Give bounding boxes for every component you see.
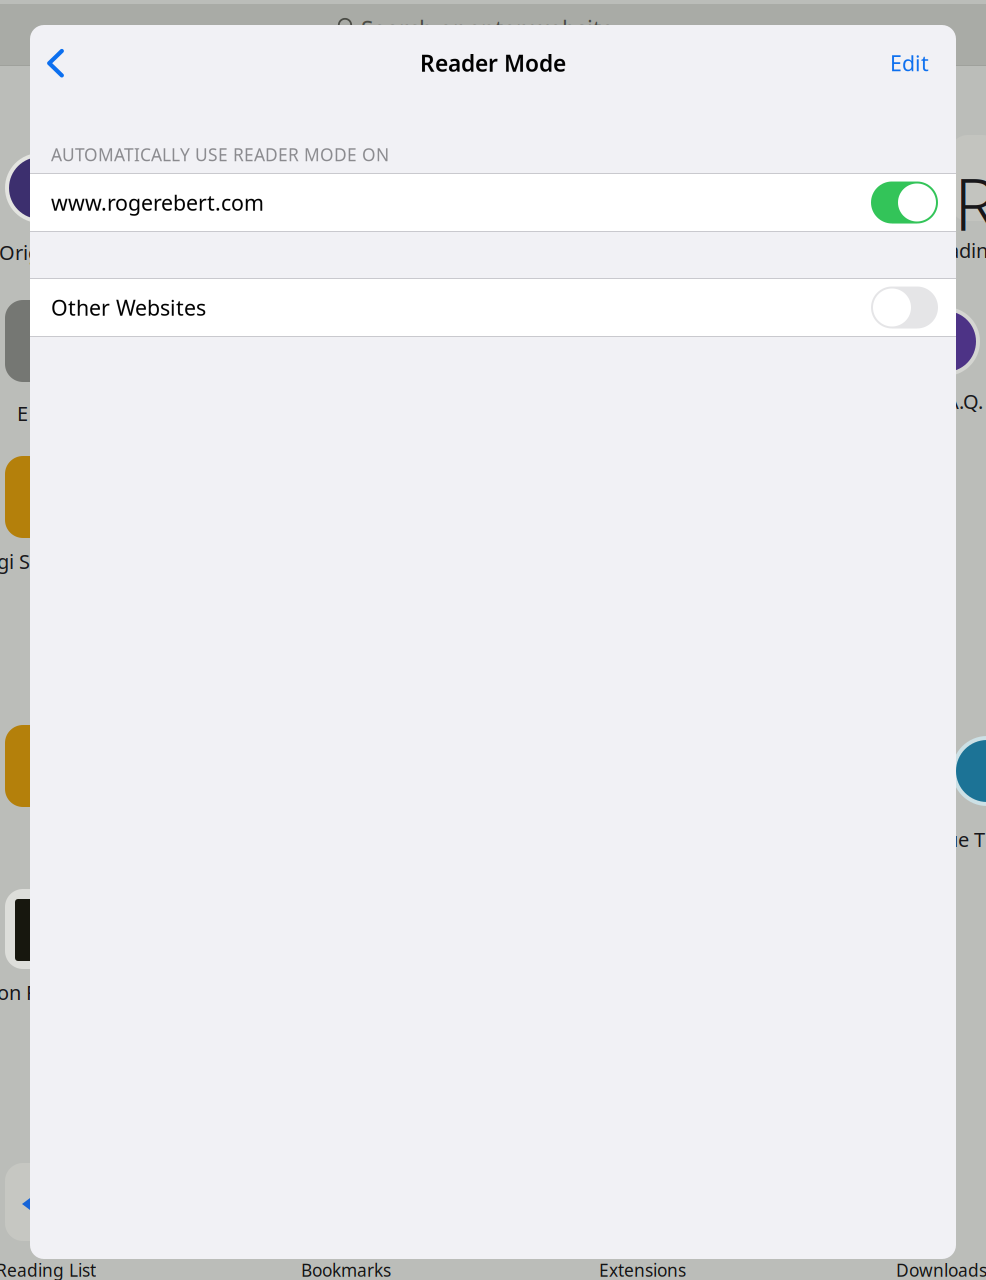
staticText: Reader Mode bbox=[420, 48, 566, 78]
button[interactable]: Bookmarks bbox=[301, 1259, 501, 1280]
staticText: A.Q. bbox=[946, 388, 983, 415]
staticText: on F bbox=[0, 979, 36, 1006]
button[interactable]: Reading List bbox=[0, 1259, 96, 1280]
button[interactable]: Other Websites bbox=[30, 279, 956, 336]
button[interactable]: Edit bbox=[881, 38, 938, 88]
staticText: Orig bbox=[0, 239, 40, 266]
staticText: Search or enter website bbox=[361, 14, 614, 44]
button[interactable]: Extensions bbox=[599, 1259, 799, 1280]
staticText: Extensions bbox=[599, 1258, 686, 1280]
staticText: adin bbox=[948, 237, 986, 264]
staticText: Bookmarks bbox=[301, 1258, 391, 1280]
staticText: ue T bbox=[946, 826, 985, 853]
button[interactable]: www.rogerebert.com bbox=[30, 174, 956, 231]
staticText: www.rogerebert.com bbox=[51, 188, 264, 217]
staticText: Edit bbox=[890, 49, 929, 77]
button[interactable]: Downloads bbox=[896, 1259, 986, 1280]
staticText: Reading List bbox=[0, 1258, 96, 1280]
staticText: E bbox=[17, 400, 28, 427]
staticText: AUTOMATICALLY USE READER MODE ON bbox=[51, 143, 389, 166]
staticText: Other Websites bbox=[51, 293, 206, 322]
staticText: gi S bbox=[0, 548, 30, 575]
button[interactable]: Back bbox=[35, 36, 80, 90]
staticText: Downloads bbox=[896, 1258, 986, 1280]
staticText: R bbox=[954, 155, 986, 251]
